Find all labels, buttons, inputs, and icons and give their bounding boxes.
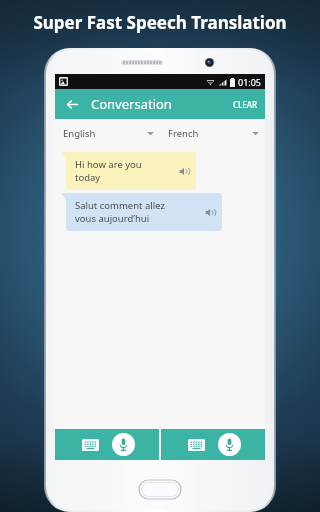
staticText: vous aujourd’hui: [75, 212, 150, 225]
button[interactable]: French: [160, 119, 265, 147]
staticText: French: [168, 127, 199, 140]
staticText: today: [75, 171, 101, 184]
other: Play audio: [205, 207, 216, 218]
staticText: Super Fast Speech Translation: [33, 11, 287, 34]
button[interactable]: Keyboard for English input: [79, 434, 101, 456]
staticText: CLEAR: [233, 99, 258, 110]
button[interactable]: Keyboard for French input: [185, 434, 207, 456]
other: Play audio: [179, 166, 190, 177]
staticText: Conversation: [91, 95, 172, 113]
staticText: 01:05: [238, 76, 262, 88]
button[interactable]: English: [55, 119, 160, 147]
button[interactable]: CLEAR: [226, 93, 265, 116]
staticText: English: [63, 127, 96, 140]
button[interactable]: Home: [139, 480, 181, 499]
button[interactable]: Speak French input: [218, 433, 241, 456]
button[interactable]: Back: [61, 93, 83, 115]
staticText: Salut comment allez: [75, 199, 165, 212]
button[interactable]: Hi how are you: [66, 152, 196, 190]
button[interactable]: Speak English input: [112, 433, 135, 456]
staticText: Hi how are you: [75, 158, 142, 171]
button[interactable]: Salut comment allez: [66, 193, 222, 231]
